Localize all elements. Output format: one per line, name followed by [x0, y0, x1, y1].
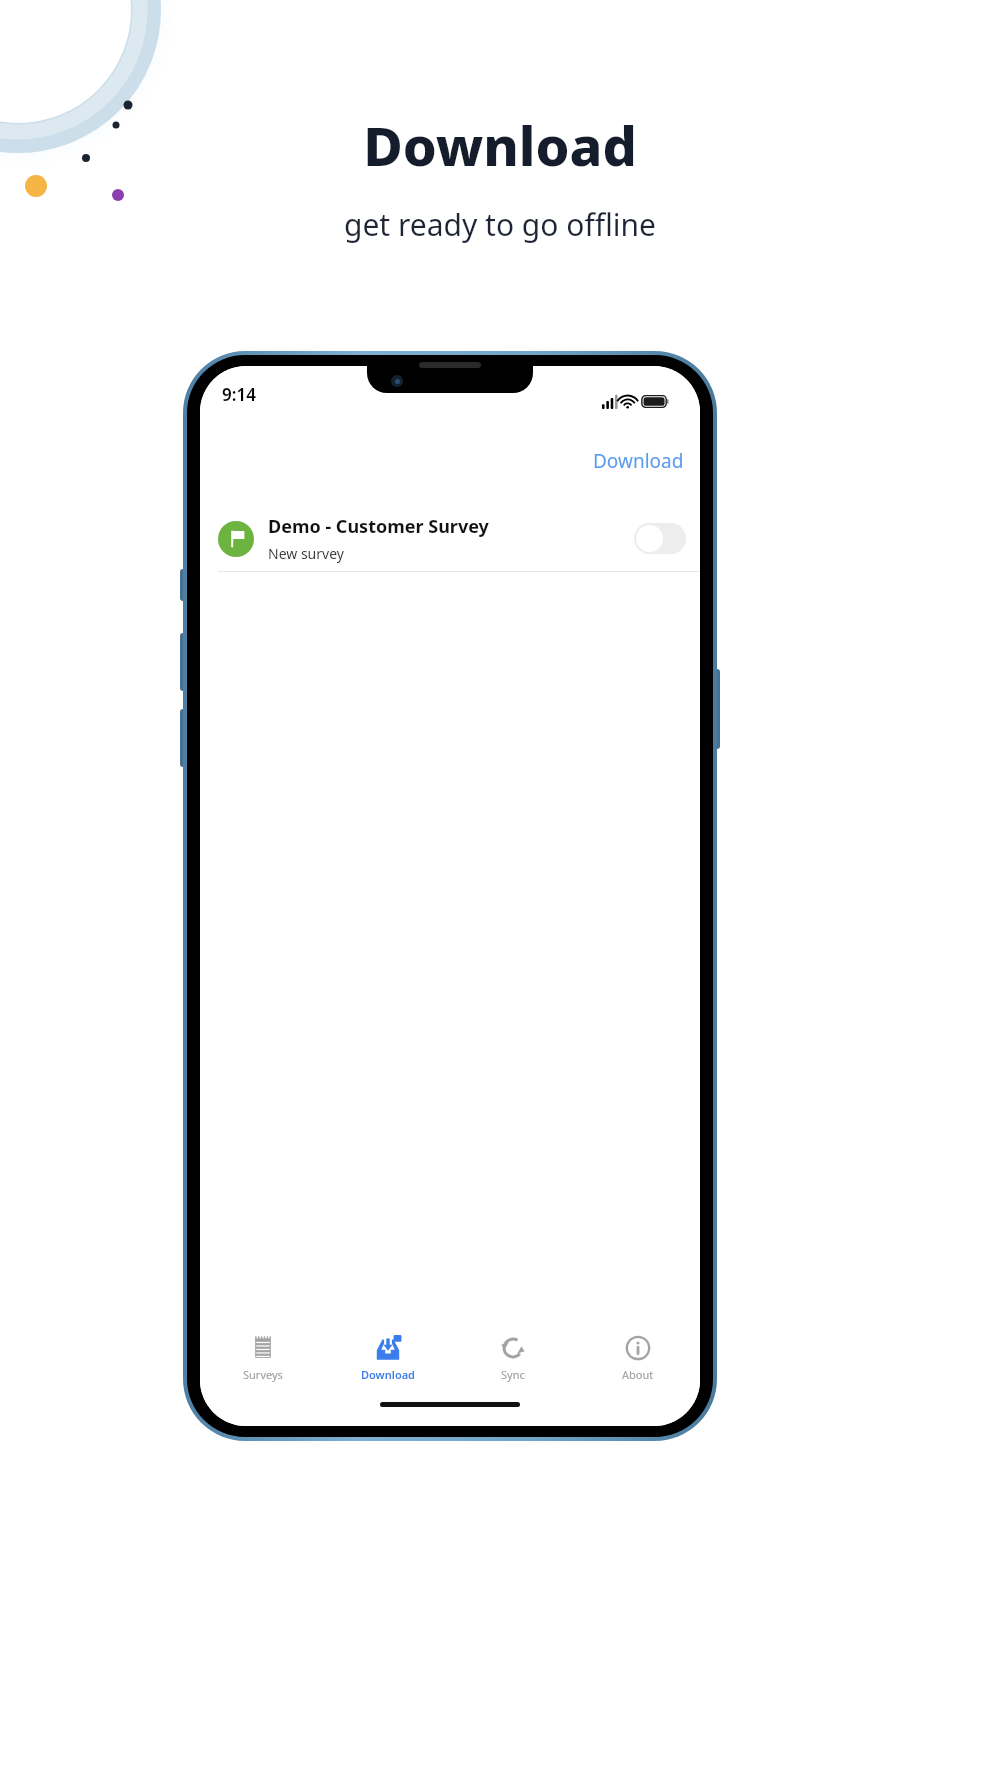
staticText: Download	[363, 108, 637, 182]
staticText: Sync	[501, 1367, 525, 1382]
button[interactable]: About	[575, 1324, 700, 1382]
button[interactable]: Download	[325, 1324, 450, 1382]
button[interactable]: Download survey toggle	[634, 523, 686, 554]
staticText: Surveys	[243, 1367, 283, 1382]
staticText: Demo - Customer Survey	[268, 514, 489, 539]
staticText: New survey	[268, 544, 344, 563]
button[interactable]: Sync	[450, 1324, 575, 1382]
staticText: Download	[361, 1367, 415, 1382]
staticText: get ready to go offline	[344, 204, 656, 245]
button[interactable]: Demo - Customer Survey	[200, 510, 700, 572]
button[interactable]: Surveys	[200, 1324, 325, 1382]
staticText: 9:14	[222, 383, 256, 406]
button[interactable]: Download	[577, 442, 700, 480]
staticText: Download	[593, 448, 684, 474]
staticText: About	[622, 1367, 654, 1382]
